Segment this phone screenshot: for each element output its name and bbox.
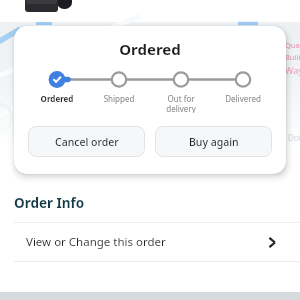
staticText: Cancel order — [55, 135, 119, 149]
button[interactable]: View or Change this order — [0, 223, 300, 261]
staticText: Buy again — [189, 135, 239, 149]
staticText: Order Info — [14, 194, 85, 212]
staticText: Ordered — [14, 39, 286, 59]
staticText: Way — [285, 64, 300, 76]
button[interactable]: Cancel order — [28, 126, 145, 157]
staticText: Shipped — [89, 93, 149, 104]
staticText: Ordered — [27, 93, 87, 104]
staticText: View or Change this order — [26, 234, 166, 250]
staticText: Out for delivery — [151, 93, 211, 113]
button[interactable]: Buy again — [155, 126, 272, 157]
staticText: Quart — [285, 40, 300, 50]
staticText: Delivered — [213, 93, 273, 104]
staticText: Building — [285, 52, 300, 62]
staticText: Down — [288, 132, 300, 143]
